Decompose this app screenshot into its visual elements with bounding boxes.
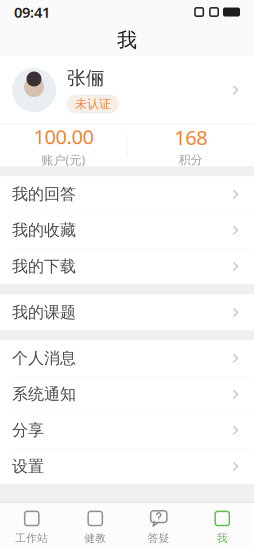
staticText: 我的下载 [12, 257, 76, 276]
staticText: 积分 [179, 152, 203, 167]
staticText: 系统通知 [12, 384, 76, 404]
staticText: 答疑 [148, 532, 170, 545]
staticText: 168 [174, 124, 207, 150]
button[interactable]: 我的课题 [0, 294, 254, 330]
staticText: 100.00 [33, 123, 93, 150]
button[interactable]: 健教 [63, 503, 127, 550]
button[interactable]: 工作站 [0, 503, 63, 550]
button[interactable]: 100.00 [0, 124, 127, 166]
button[interactable]: 设置 [0, 448, 254, 484]
staticText: 健教 [84, 532, 106, 545]
button[interactable]: 分享 [0, 412, 254, 448]
button[interactable]: 系统通知 [0, 376, 254, 412]
button[interactable]: 个人消息 [0, 340, 254, 376]
button[interactable]: 答疑 [127, 503, 190, 550]
button[interactable]: 我的下载 [0, 248, 254, 284]
staticText: 我的课题 [12, 303, 76, 322]
button[interactable]: 张俪 [0, 56, 254, 124]
staticText: 09:41 [14, 2, 50, 22]
staticText: 分享 [12, 420, 44, 440]
staticText: 设置 [12, 457, 44, 476]
staticText: 我的回答 [12, 184, 76, 204]
staticText: 工作站 [15, 532, 48, 545]
staticText: 我 [117, 28, 137, 52]
staticText: 未认证 [75, 97, 111, 111]
button[interactable]: 我的回答 [0, 176, 254, 212]
staticText: 个人消息 [12, 348, 76, 368]
button[interactable]: 我 [190, 503, 254, 550]
staticText: 我 [217, 532, 228, 545]
button[interactable]: 168 [127, 124, 254, 166]
staticText: 我的收藏 [12, 220, 76, 240]
staticText: 账户(元) [41, 152, 85, 168]
staticText: 张俪 [67, 67, 105, 90]
button[interactable]: 我的收藏 [0, 212, 254, 248]
